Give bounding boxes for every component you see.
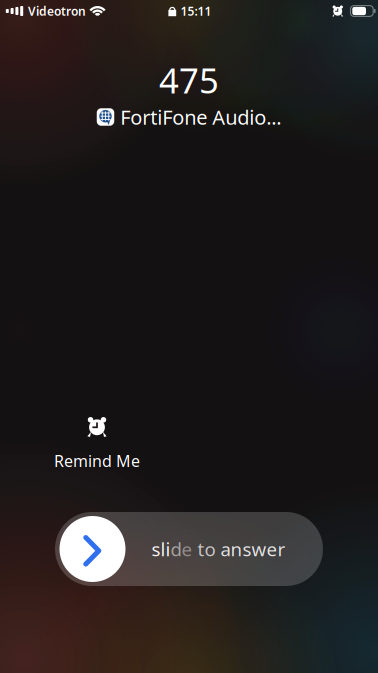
staticText: d	[170, 537, 181, 561]
staticText: Videotron	[28, 3, 86, 19]
staticText: 15:11	[181, 3, 212, 19]
staticText: Remind Me	[54, 450, 140, 471]
staticText: answer	[215, 537, 285, 561]
button[interactable]: sli	[55, 512, 323, 586]
staticText: FortiFone Audio...	[120, 104, 281, 130]
staticText: sli	[151, 537, 170, 561]
staticText: e	[181, 537, 192, 561]
button[interactable]: Remind Me	[27, 415, 167, 473]
staticText: to	[192, 537, 215, 561]
staticText: 475	[159, 57, 219, 103]
